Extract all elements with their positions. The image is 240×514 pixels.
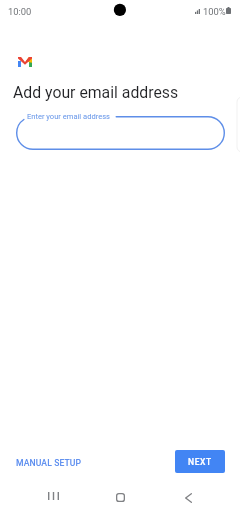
staticText: Add your email address	[13, 83, 179, 102]
button[interactable]: Home	[104, 481, 136, 513]
button[interactable]: Recent apps	[37, 480, 69, 512]
staticText: NEXT	[188, 457, 212, 467]
staticText: MANUAL SETUP	[16, 458, 82, 468]
button[interactable]: NEXT	[175, 450, 225, 473]
staticText: 10:00	[8, 6, 32, 17]
button[interactable]: Enter your email address	[16, 116, 225, 150]
button[interactable]: MANUAL SETUP	[9, 452, 89, 474]
button[interactable]: Back	[172, 482, 204, 514]
staticText: 100%	[203, 6, 226, 17]
staticText: Enter your email address	[27, 112, 110, 121]
